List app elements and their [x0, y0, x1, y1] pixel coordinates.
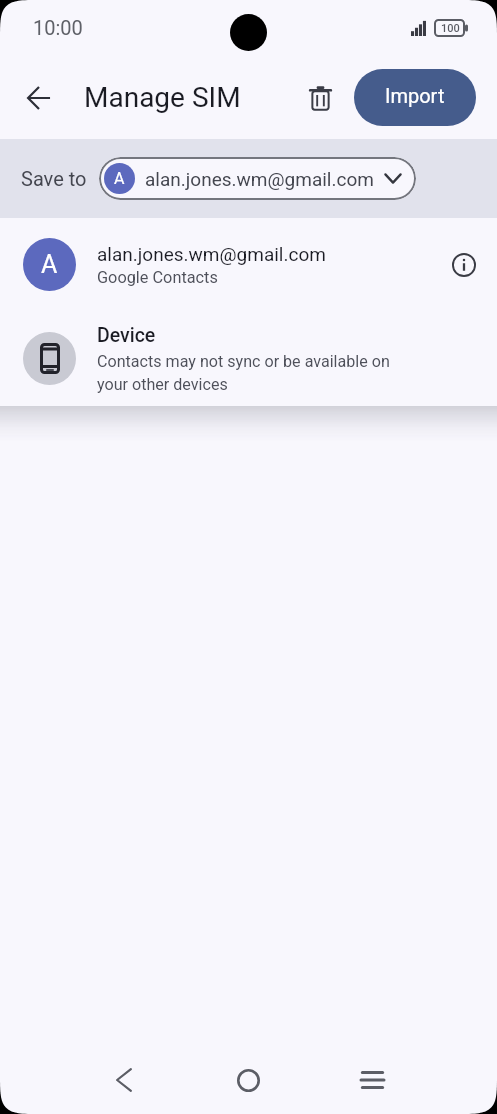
staticText: 100 — [441, 22, 460, 35]
button[interactable]: Import — [354, 69, 476, 126]
button[interactable]: A — [0, 218, 497, 311]
button[interactable]: Home — [225, 1057, 271, 1103]
staticText: alan.jones.wm@gmail.com — [97, 243, 326, 265]
staticText: Save to — [21, 167, 87, 190]
staticText: Google Contacts — [97, 268, 218, 287]
button[interactable]: Delete — [298, 76, 342, 120]
staticText: alan.jones.wm@gmail.com — [145, 168, 374, 190]
staticText: 10:00 — [33, 16, 83, 39]
button[interactable]: Back — [101, 1057, 147, 1103]
staticText: A — [114, 169, 125, 188]
button[interactable]: Device — [0, 311, 497, 406]
staticText: Manage SIM — [84, 81, 241, 114]
button[interactable]: A — [99, 157, 416, 200]
staticText: Device — [97, 324, 156, 347]
staticText: A — [41, 250, 58, 279]
staticText: Import — [385, 84, 445, 107]
button[interactable]: Back — [16, 75, 62, 121]
button[interactable]: Info — [444, 245, 484, 285]
button[interactable]: Recent apps — [349, 1057, 395, 1103]
staticText: Contacts may not sync or be available on… — [97, 352, 390, 394]
